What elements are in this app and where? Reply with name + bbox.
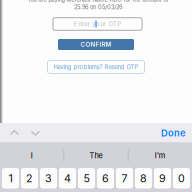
staticText: 5: [83, 172, 89, 185]
staticText: 6: [102, 172, 109, 185]
staticText: 7: [121, 172, 127, 185]
staticText: Having problems? Resend OTP: [53, 63, 138, 71]
button[interactable]: 5: [78, 168, 95, 188]
button[interactable]: 4: [59, 168, 76, 188]
staticText: 2: [26, 172, 33, 185]
button[interactable]: I: [0, 143, 63, 168]
button[interactable]: 0: [173, 168, 190, 188]
button[interactable]: I'm: [128, 143, 192, 168]
staticText: Enter your OTP: [74, 20, 121, 28]
button[interactable]: Done: [161, 127, 186, 139]
staticText: CONFIRM: [80, 41, 111, 48]
staticText: I'm: [155, 151, 166, 160]
button[interactable]: Having problems? Resend OTP: [47, 60, 144, 73]
staticText: Done: [161, 127, 186, 139]
button[interactable]: 3: [40, 168, 57, 188]
staticText: 4: [64, 172, 71, 185]
button[interactable]: Previous field: [9, 127, 20, 138]
button[interactable]: 6: [97, 168, 114, 188]
staticText: 0: [178, 172, 185, 185]
staticText: I: [31, 151, 33, 160]
staticText: 8: [140, 172, 147, 185]
staticText: 3: [45, 172, 52, 185]
staticText: You are paying Merchant Name ABC for the…: [27, 0, 168, 3]
staticText: The: [89, 151, 102, 160]
button[interactable]: Next field: [30, 127, 41, 138]
button[interactable]: CONFIRM: [58, 39, 134, 50]
staticText: 9: [159, 172, 166, 185]
button[interactable]: 1: [2, 168, 19, 188]
button[interactable]: The: [64, 143, 128, 168]
staticText: 25.96 on 05/03/26: [74, 4, 122, 11]
button[interactable]: 9: [154, 168, 171, 188]
button[interactable]: 7: [116, 168, 133, 188]
staticText: 1: [8, 172, 12, 185]
button[interactable]: 8: [135, 168, 152, 188]
button[interactable]: 2: [21, 168, 38, 188]
